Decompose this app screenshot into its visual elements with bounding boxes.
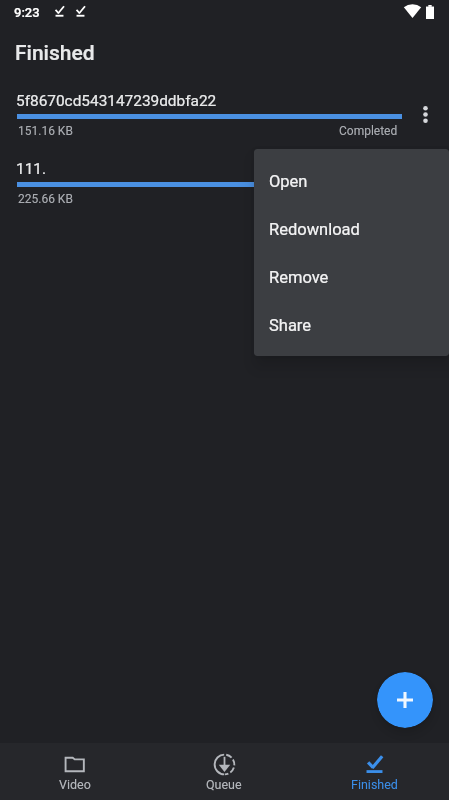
staticText: Redownload: [269, 220, 360, 239]
staticText: Remove: [269, 268, 329, 287]
button[interactable]: 5f8670cd543147239ddbfa22: [0, 78, 449, 146]
button[interactable]: Add download: [377, 672, 433, 728]
button[interactable]: Finished: [299, 743, 449, 800]
button[interactable]: Video: [0, 743, 149, 800]
button[interactable]: 111.: [0, 146, 449, 214]
staticText: 5f8670cd543147239ddbfa22: [16, 92, 217, 110]
staticText: 111.: [16, 160, 47, 178]
staticText: 225.66 KB: [18, 192, 73, 206]
staticText: 9:23: [14, 5, 40, 20]
staticText: Finished: [351, 777, 398, 792]
button[interactable]: Redownload: [254, 205, 449, 253]
staticText: Completed: [339, 124, 398, 138]
staticText: Video: [59, 777, 91, 792]
button[interactable]: Share: [254, 301, 449, 349]
button[interactable]: More options: [405, 94, 445, 134]
staticText: Open: [269, 172, 308, 191]
staticText: Finished: [15, 41, 95, 66]
button[interactable]: Open: [254, 157, 449, 205]
staticText: Share: [269, 316, 312, 335]
staticText: 151.16 KB: [18, 124, 73, 138]
button[interactable]: Queue: [149, 743, 299, 800]
staticText: Queue: [206, 777, 242, 792]
button[interactable]: Remove: [254, 253, 449, 301]
